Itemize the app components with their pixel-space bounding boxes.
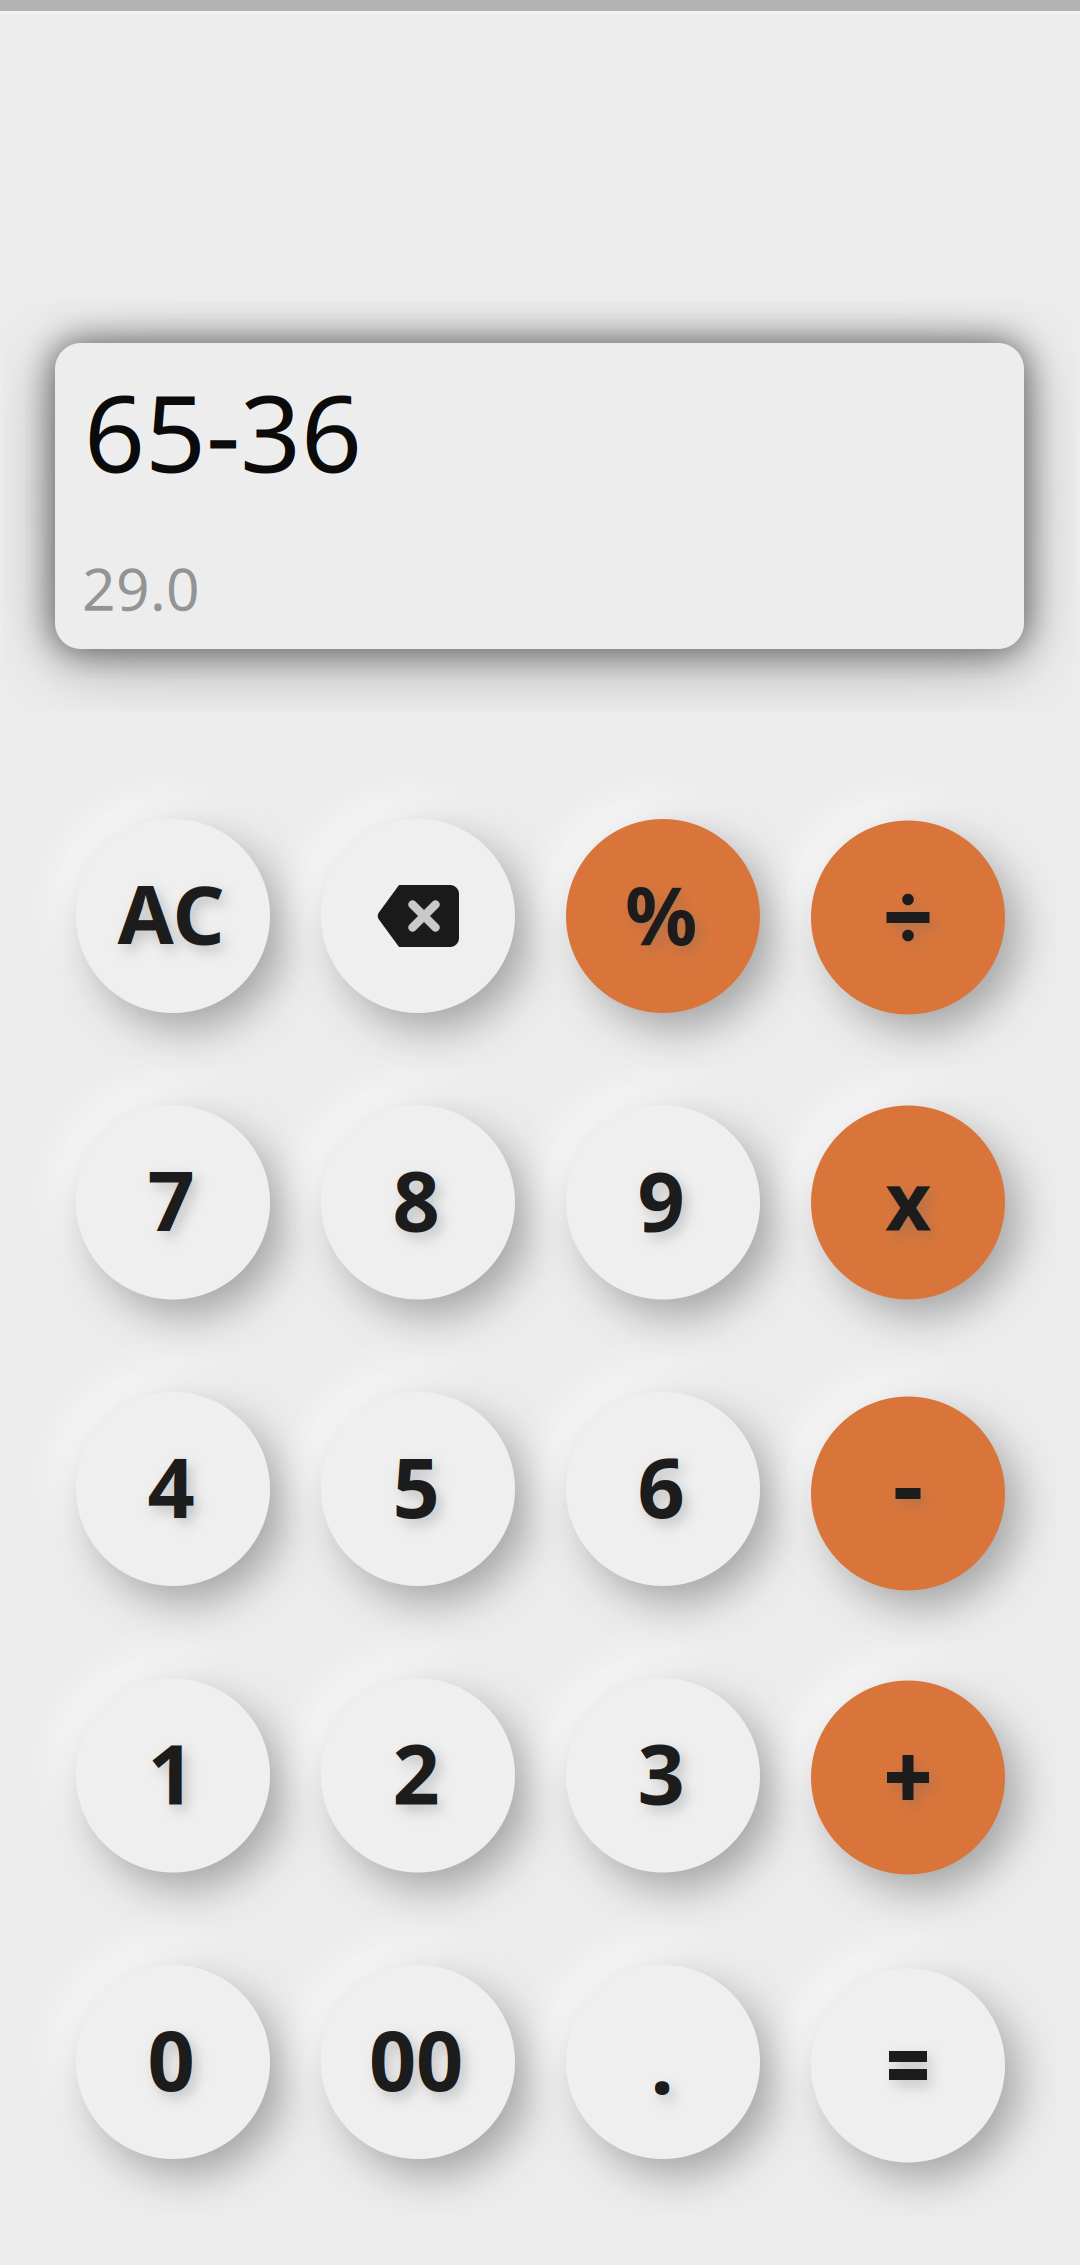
button[interactable]: 8 (321, 1105, 515, 1299)
staticText: % (625, 861, 697, 967)
staticText: 29.0 (82, 549, 200, 627)
staticText: 0 (147, 2004, 194, 2114)
button[interactable]: . (566, 1965, 760, 2159)
staticText: 6 (637, 1431, 684, 1541)
button[interactable]: 0 (76, 1965, 270, 2159)
staticText: x (885, 1146, 931, 1253)
button[interactable]: Equals (811, 1968, 1005, 2162)
staticText: 5 (392, 1431, 439, 1541)
staticText: 2 (392, 1718, 439, 1827)
button[interactable]: % (566, 819, 760, 1013)
staticText: 9 (637, 1145, 684, 1254)
button[interactable]: Delete (321, 819, 515, 1013)
staticText: 65-36 (84, 360, 362, 502)
staticText: 1 (147, 1718, 194, 1827)
button[interactable]: 4 (76, 1392, 270, 1586)
button[interactable]: 00 (321, 1965, 515, 2159)
button[interactable]: Divide (811, 820, 1005, 1014)
button[interactable]: Minus (811, 1396, 1005, 1590)
button[interactable]: 6 (566, 1392, 760, 1586)
staticText: 3 (637, 1718, 684, 1827)
button[interactable]: Plus (811, 1680, 1005, 1874)
staticText: 4 (147, 1431, 194, 1541)
staticText: AC (117, 859, 224, 967)
button[interactable]: 1 (76, 1678, 270, 1872)
staticText: 7 (147, 1145, 194, 1254)
button[interactable]: 9 (566, 1105, 760, 1299)
button[interactable]: x (811, 1105, 1005, 1299)
staticText: 00 (369, 2004, 463, 2114)
button[interactable]: 7 (76, 1105, 270, 1299)
button[interactable]: 3 (566, 1678, 760, 1872)
staticText: 8 (392, 1145, 439, 1254)
button[interactable]: AC (76, 819, 270, 1013)
staticText: . (650, 2007, 673, 2117)
button[interactable]: 2 (321, 1678, 515, 1872)
button[interactable]: 5 (321, 1392, 515, 1586)
